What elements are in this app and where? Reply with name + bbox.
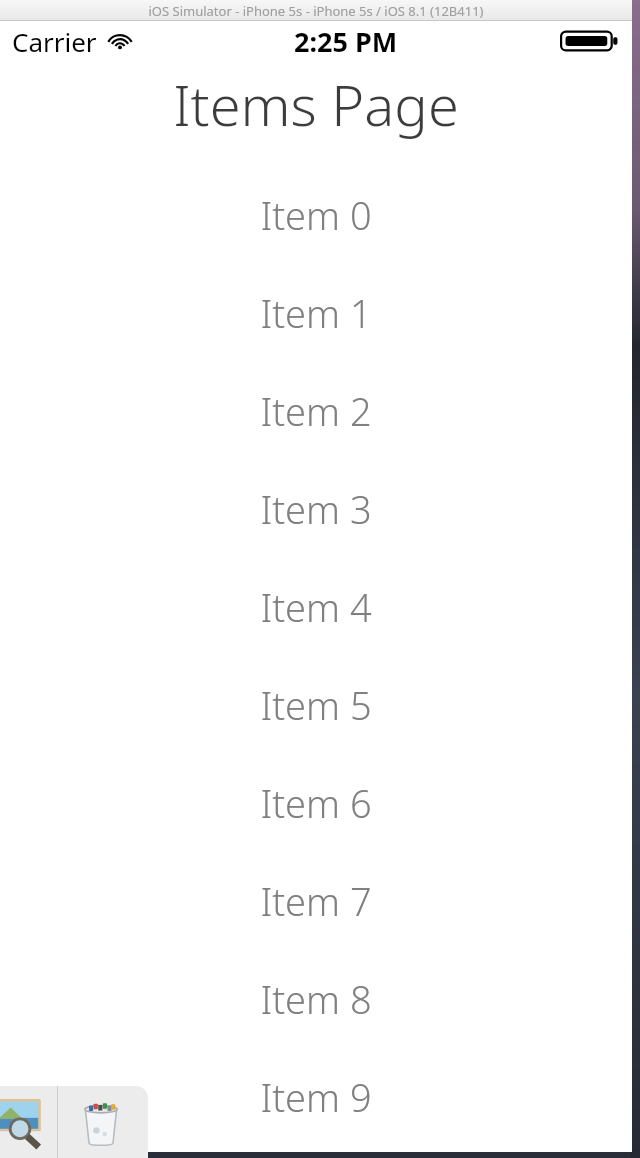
button[interactable]: Item 0 xyxy=(0,166,632,264)
button[interactable]: Item 7 xyxy=(0,852,632,950)
button[interactable]: Item 5 xyxy=(0,656,632,754)
staticText: Item 4 xyxy=(260,581,372,633)
staticText: Item 7 xyxy=(260,875,372,927)
staticText: Item 8 xyxy=(260,973,372,1025)
staticText: iOS Simulator - iPhone 5s - iPhone 5s / … xyxy=(148,2,484,20)
button[interactable]: Item 1 xyxy=(0,264,632,362)
button[interactable]: Item 6 xyxy=(0,754,632,852)
button[interactable]: Item 9 xyxy=(0,1048,632,1146)
staticText: 2:25 PM xyxy=(294,23,398,60)
staticText: Item 3 xyxy=(260,483,372,535)
staticText: Item 9 xyxy=(260,1071,372,1123)
staticText: Item 0 xyxy=(260,189,372,241)
staticText: Item 6 xyxy=(260,777,372,829)
staticText: Item 5 xyxy=(260,679,372,731)
staticText: Items Page xyxy=(173,66,459,142)
staticText: Item 2 xyxy=(260,385,372,437)
button[interactable]: Item 4 xyxy=(0,558,632,656)
button[interactable]: Item 2 xyxy=(0,362,632,460)
staticText: Carrier xyxy=(12,24,97,59)
button[interactable]: Item 3 xyxy=(0,460,632,558)
staticText: Item 1 xyxy=(260,287,372,339)
button[interactable]: Item 8 xyxy=(0,950,632,1048)
